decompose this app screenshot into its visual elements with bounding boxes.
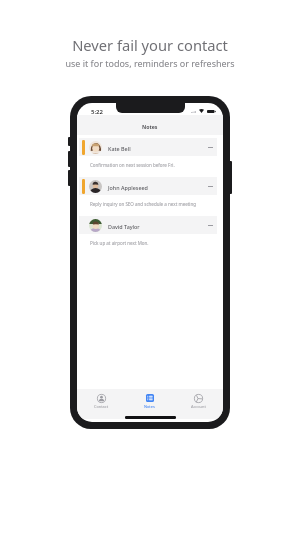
staticText: Never fail your contact [72, 35, 228, 55]
staticText: 5:22 [91, 108, 103, 116]
staticText: Confirmation on next session before Fri. [90, 162, 175, 168]
staticText: David Taylor [108, 223, 140, 230]
staticText: Pick up at airport next Mon. [90, 240, 149, 246]
staticText: Contact [94, 404, 109, 409]
button[interactable]: Account tab [183, 393, 214, 410]
staticText: Notes [142, 123, 158, 130]
button[interactable]: Notes tab [136, 393, 163, 410]
button[interactable]: John Appleseed [79, 177, 217, 216]
button[interactable]: Kate Bell [79, 138, 217, 177]
staticText: Account [191, 404, 206, 409]
staticText: Notes [144, 404, 155, 409]
staticText: use it for todos, reminders or refresher… [65, 57, 235, 69]
button[interactable]: David Taylor [79, 216, 217, 255]
button[interactable]: Contacts tab [86, 393, 117, 410]
staticText: John Appleseed [108, 184, 148, 191]
staticText: Reply inquiry on SEO and schedule a next… [90, 201, 197, 207]
staticText: Kate Bell [108, 145, 131, 152]
